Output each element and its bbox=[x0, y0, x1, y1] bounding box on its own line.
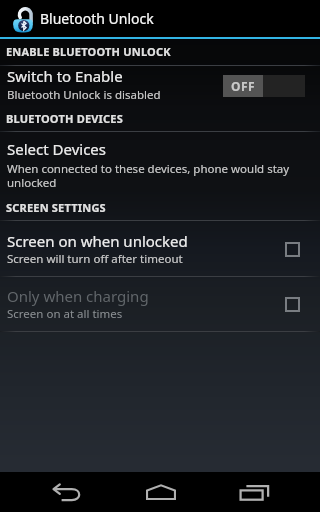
button[interactable]: Toggle Bluetooth Unlock bbox=[215, 75, 320, 97]
staticText: Select Devices bbox=[7, 139, 106, 159]
button[interactable]: Recent apps bbox=[207, 472, 301, 512]
staticText: BLUETOOTH DEVICES bbox=[6, 111, 123, 126]
staticText: Switch to Enable bbox=[7, 66, 123, 86]
staticText: Bluetooth Unlock bbox=[40, 9, 154, 28]
staticText: Screen will turn off after timeout bbox=[7, 251, 183, 267]
button[interactable]: Switch to Enable bbox=[0, 66, 320, 103]
button[interactable]: Checkbox bbox=[264, 227, 320, 271]
button[interactable]: Checkbox bbox=[264, 282, 320, 326]
button[interactable]: Back bbox=[20, 472, 114, 512]
staticText: ENABLE BLUETOOTH UNLOCK bbox=[6, 44, 171, 59]
button[interactable]: Only when charging bbox=[0, 277, 320, 331]
button[interactable]: Screen on when unlocked bbox=[0, 221, 320, 276]
staticText: Screen on when unlocked bbox=[7, 231, 188, 251]
staticText: Only when charging bbox=[7, 286, 149, 306]
button[interactable]: Select Devices bbox=[0, 132, 320, 190]
staticText: OFF bbox=[231, 78, 255, 94]
staticText: When connected to these devices, phone w… bbox=[7, 161, 290, 190]
button[interactable]: Home bbox=[114, 472, 207, 512]
staticText: Screen on at all times bbox=[7, 306, 123, 322]
staticText: SCREEN SETTINGS bbox=[6, 200, 106, 215]
staticText: Bluetooth Unlock is disabled bbox=[7, 87, 161, 103]
